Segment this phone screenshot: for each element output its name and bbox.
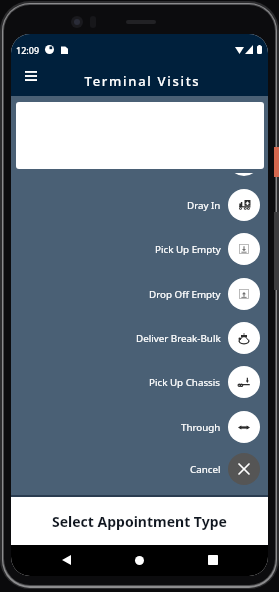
button[interactable]: Pick Up Empty	[11, 233, 268, 265]
button[interactable]: Dray In	[11, 189, 268, 221]
button[interactable]: Select Appointment Type	[11, 497, 268, 545]
button[interactable]: Dray Out	[11, 173, 268, 176]
staticText: Drop Off Empty	[149, 288, 221, 301]
button[interactable]: Deliver Break-Bulk	[11, 322, 268, 354]
button[interactable]: Pick Up Chassis	[11, 366, 268, 398]
staticText: Pick Up Empty	[155, 243, 221, 256]
button[interactable]: Back	[52, 546, 80, 574]
button[interactable]: Cancel	[11, 453, 268, 485]
button[interactable]: Menu	[19, 64, 42, 87]
staticText: Deliver Break-Bulk	[136, 332, 221, 345]
staticText: Through	[181, 421, 221, 434]
staticText: Dray In	[187, 199, 221, 212]
button[interactable]: Through	[11, 411, 268, 443]
button[interactable]: Home	[125, 546, 153, 574]
staticText: Select Appointment Type	[52, 512, 227, 531]
staticText: Terminal Visits	[14, 72, 268, 90]
button[interactable]: Recents	[199, 546, 227, 574]
button[interactable]: Drop Off Empty	[11, 278, 268, 310]
staticText: 12:09	[16, 44, 40, 56]
staticText: Cancel	[190, 463, 221, 476]
staticText: Pick Up Chassis	[149, 376, 221, 389]
